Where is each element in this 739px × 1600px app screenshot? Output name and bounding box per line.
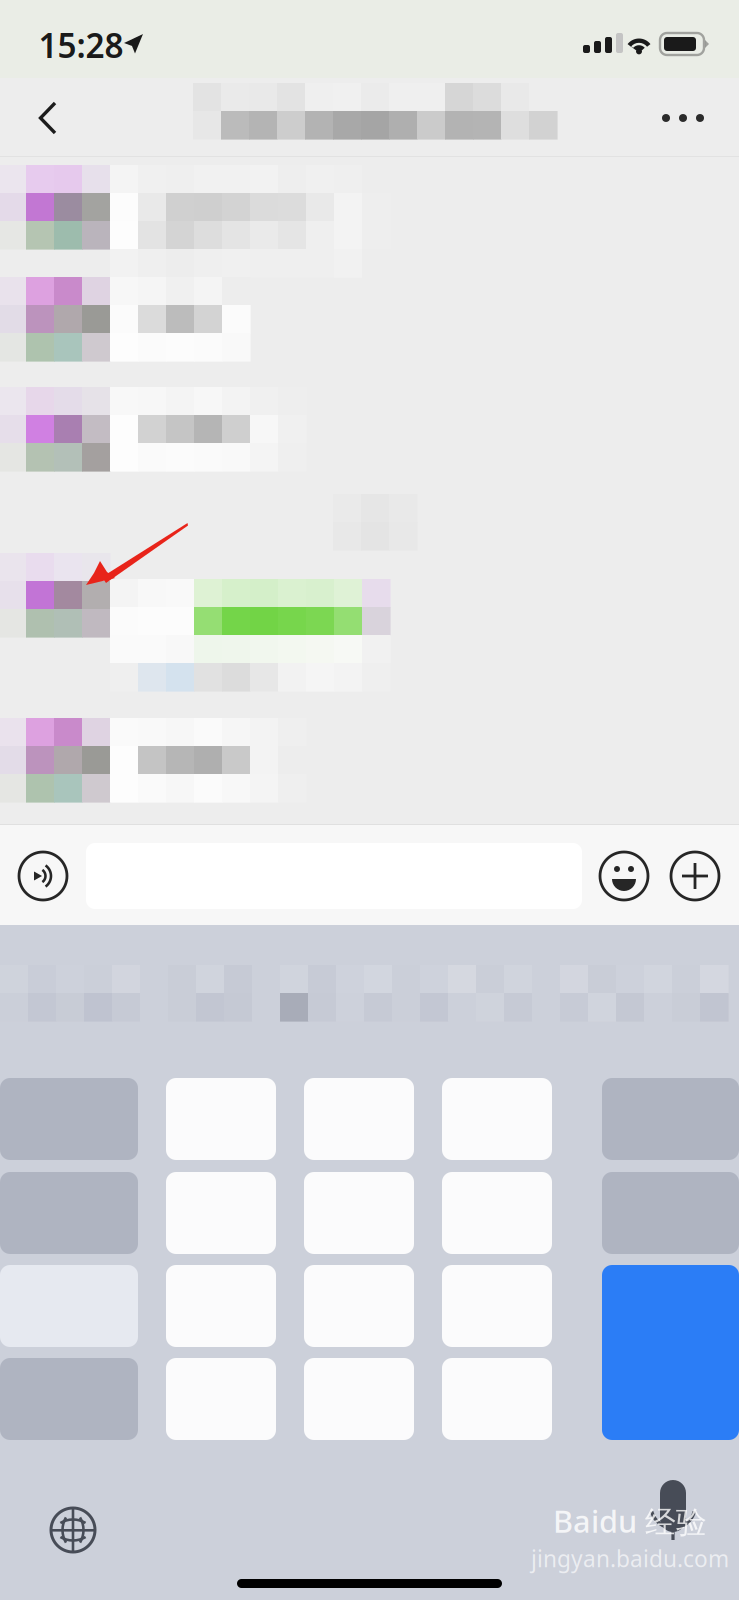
- staticText: 15:28: [38, 23, 123, 67]
- button[interactable]: key: [304, 1265, 414, 1347]
- button[interactable]: key: [166, 1358, 276, 1440]
- staticText: Baidu 经验: [553, 1500, 707, 1541]
- button[interactable]: key: [442, 1265, 552, 1347]
- button[interactable]: Send: [602, 1265, 739, 1440]
- button[interactable]: key: [304, 1078, 414, 1160]
- button[interactable]: key: [442, 1078, 552, 1160]
- button[interactable]: key: [442, 1172, 552, 1254]
- staticText: jingyan.baidu.com: [531, 1543, 729, 1573]
- button[interactable]: More functions: [669, 850, 721, 902]
- button[interactable]: key: [166, 1172, 276, 1254]
- button[interactable]: key: [166, 1078, 276, 1160]
- button[interactable]: Back: [0, 78, 92, 158]
- button[interactable]: Emoji: [598, 850, 650, 902]
- button[interactable]: key: [304, 1358, 414, 1440]
- button[interactable]: key: [304, 1172, 414, 1254]
- button[interactable]: More: [637, 78, 729, 158]
- button[interactable]: Voice: [646, 1480, 700, 1540]
- button[interactable]: key: [442, 1358, 552, 1440]
- button[interactable]: Switch keyboard: [49, 1506, 97, 1554]
- button[interactable]: key: [166, 1265, 276, 1347]
- button[interactable]: Voice input: [17, 850, 69, 902]
